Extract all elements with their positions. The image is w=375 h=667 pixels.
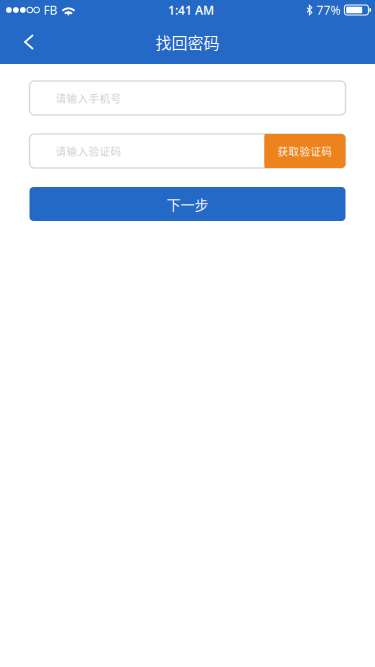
staticText: 1:41 AM — [168, 2, 214, 18]
staticText: 获取验证码 — [277, 143, 332, 159]
button[interactable]: 请输入手机号 — [29, 81, 345, 115]
staticText: 请输入验证码 — [55, 143, 121, 159]
staticText: 找回密码 — [155, 30, 219, 54]
staticText: FB — [43, 2, 57, 18]
staticText: 下一步 — [166, 194, 208, 214]
button[interactable]: Back — [11, 20, 47, 64]
button[interactable]: 请输入验证码 — [29, 134, 345, 168]
button[interactable]: 下一步 — [29, 187, 345, 221]
button[interactable]: 获取验证码 — [264, 134, 345, 168]
staticText: 77% — [316, 2, 340, 18]
staticText: 请输入手机号 — [55, 90, 121, 106]
